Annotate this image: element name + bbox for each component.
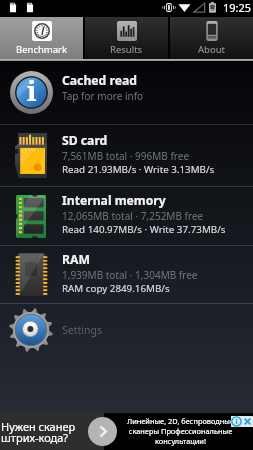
staticText: Results — [110, 43, 143, 56]
staticText: SD card — [62, 132, 108, 149]
button[interactable]: Open ad — [88, 417, 117, 446]
button[interactable]: Ad choices — [231, 416, 253, 427]
staticText: i — [27, 72, 37, 109]
staticText: RAM — [62, 251, 90, 268]
button[interactable]: i — [0, 61, 253, 124]
staticText: Settings — [62, 323, 102, 337]
button[interactable]: Benchmark — [0, 17, 83, 59]
staticText: About — [198, 43, 225, 56]
staticText: Benchmark — [16, 43, 68, 56]
staticText: Нужен сканер штрих-кода? — [1, 419, 76, 445]
staticText: Read 140.97MB/s · Write 37.73MB/s — [62, 223, 226, 236]
button[interactable]: SD card — [0, 125, 253, 186]
staticText: 7,561MB total · 996MB free — [62, 149, 190, 163]
button[interactable]: About — [170, 17, 253, 59]
button[interactable]: Нужен сканер штрих-кода? — [0, 413, 104, 450]
button[interactable]: Results — [85, 17, 168, 59]
staticText: 12,065MB total · 7,252MB free — [62, 209, 204, 223]
staticText: 19:25 — [223, 0, 252, 15]
staticText: RAM copy 2849.16MB/s — [62, 282, 170, 295]
button[interactable]: Internal memory — [0, 187, 253, 245]
staticText: Read 21.93MB/s · Write 3.13MB/s — [62, 163, 215, 176]
staticText: Линейные, 2D, беспроводные сканеры Профе… — [127, 416, 234, 446]
staticText: 1,939MB total · 1,304MB free — [62, 268, 198, 282]
button[interactable]: Settings — [0, 304, 253, 356]
button[interactable]: Линейные, 2D, беспроводные сканеры Профе… — [104, 413, 253, 450]
button[interactable]: RAM — [0, 246, 253, 303]
staticText: Cached read — [62, 72, 137, 89]
staticText: Internal memory — [62, 192, 166, 209]
staticText: Tap for more info — [62, 89, 144, 103]
